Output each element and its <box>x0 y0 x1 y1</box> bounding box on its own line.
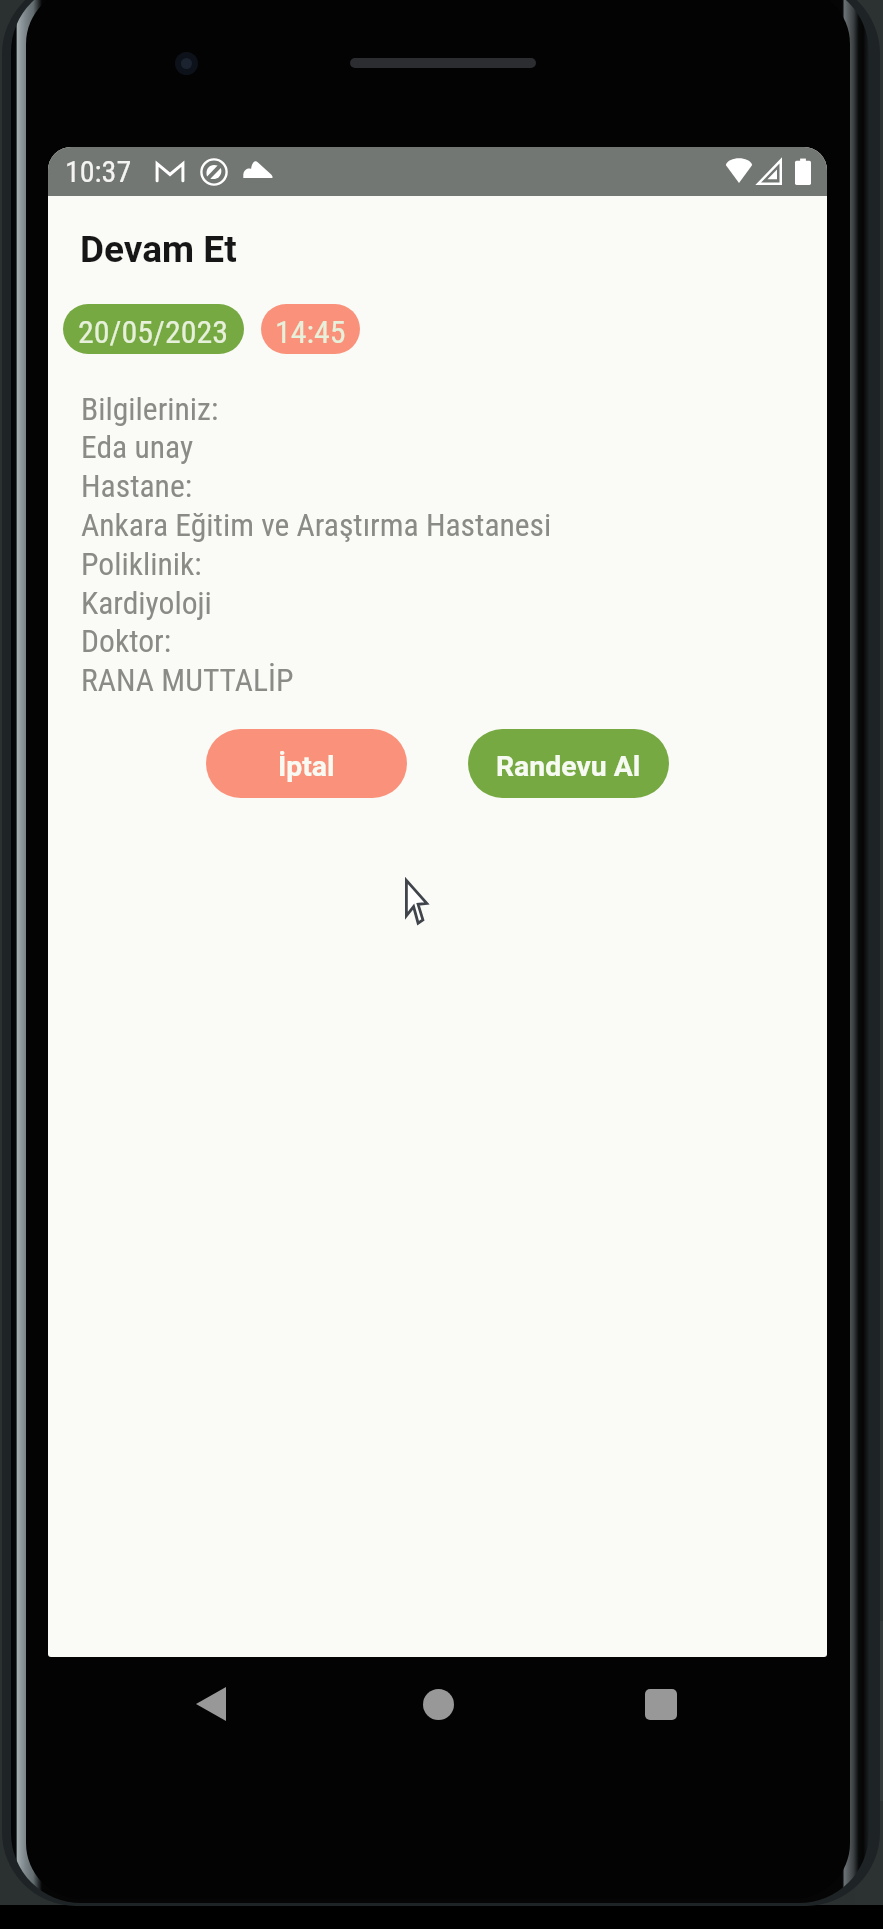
staticText: 14:45 <box>275 313 346 351</box>
button[interactable]: Recents <box>621 1664 701 1744</box>
staticText: Doktor: <box>81 623 172 660</box>
button[interactable]: Back <box>171 1664 251 1744</box>
staticText: RANA MUTTALİP <box>81 662 294 699</box>
staticText: Randevu Al <box>496 750 641 783</box>
staticText: 20/05/2023 <box>78 313 229 351</box>
button[interactable]: İptal <box>206 729 407 798</box>
button[interactable]: 14:45 <box>261 304 360 354</box>
staticText: Poliklinik: <box>81 546 202 583</box>
staticText: Hastane: <box>81 468 193 505</box>
staticText: İptal <box>278 750 335 783</box>
button[interactable]: Randevu Al <box>468 729 669 798</box>
staticText: Bilgileriniz: <box>81 391 219 428</box>
staticText: Ankara Eğitim ve Araştırma Hastanesi <box>81 507 552 544</box>
button[interactable]: 20/05/2023 <box>63 304 244 354</box>
button[interactable]: Home <box>398 1664 478 1744</box>
staticText: Devam Et <box>80 228 237 271</box>
staticText: Eda unay <box>81 429 194 466</box>
staticText: 10:37 <box>65 154 132 189</box>
staticText: Kardiyoloji <box>81 585 212 622</box>
